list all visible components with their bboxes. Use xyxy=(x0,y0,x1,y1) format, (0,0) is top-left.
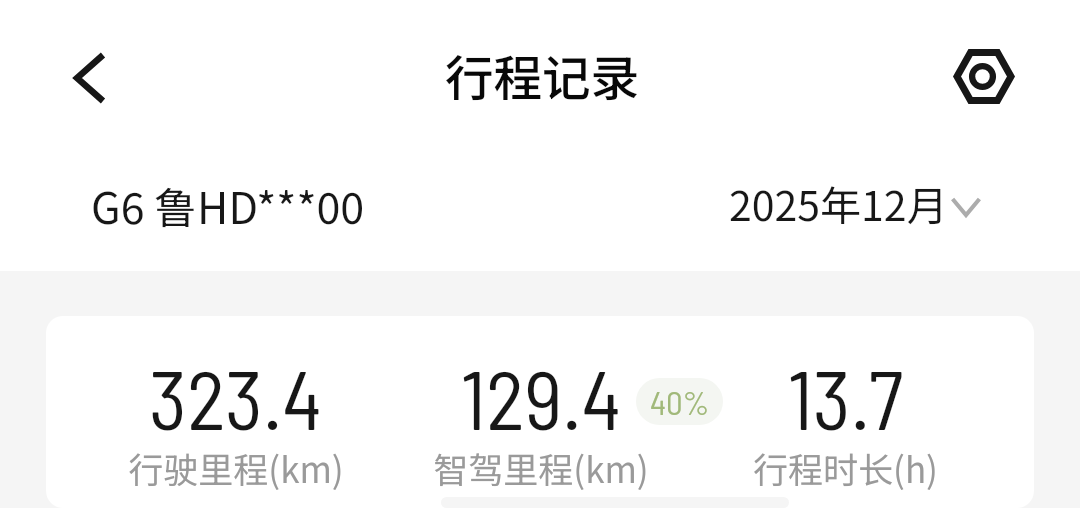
staticText: 行驶里程(km) xyxy=(128,442,344,493)
button[interactable]: 40% xyxy=(636,378,723,425)
staticText: 行程记录 xyxy=(445,40,640,110)
staticText: 行程时长(h) xyxy=(753,442,938,493)
button[interactable]: Settings xyxy=(938,30,1030,122)
staticText: 2025年12月 xyxy=(729,173,948,232)
button[interactable]: 2025年12月 xyxy=(712,168,1012,236)
staticText: 40% xyxy=(650,382,710,422)
staticText: 13.7 xyxy=(788,348,904,446)
staticText: 智驾里程(km) xyxy=(433,442,649,493)
staticText: G6 鲁HD***00 xyxy=(91,174,365,236)
button[interactable]: Back xyxy=(45,30,137,122)
staticText: 129.4 xyxy=(461,348,621,446)
staticText: 323.4 xyxy=(149,348,322,446)
